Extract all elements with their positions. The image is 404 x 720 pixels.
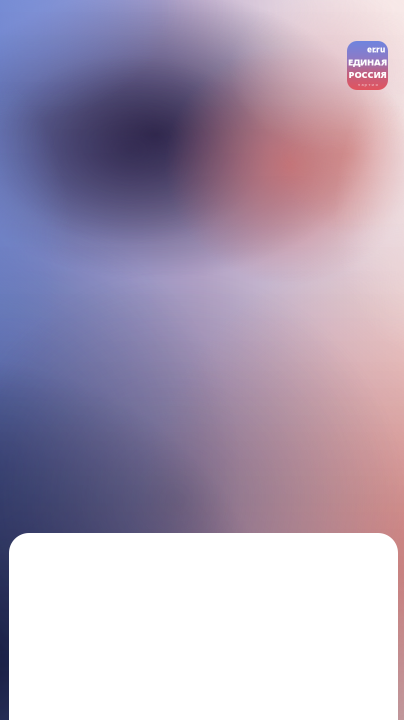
button[interactable]: ЕДИНАЯ РОССИЯ	[347, 41, 388, 90]
staticText: РОССИЯ	[348, 68, 386, 81]
staticText: ЕДИНАЯ	[348, 56, 387, 68]
staticText: er.ru	[367, 44, 385, 55]
staticText: п а р т и я	[357, 82, 377, 87]
